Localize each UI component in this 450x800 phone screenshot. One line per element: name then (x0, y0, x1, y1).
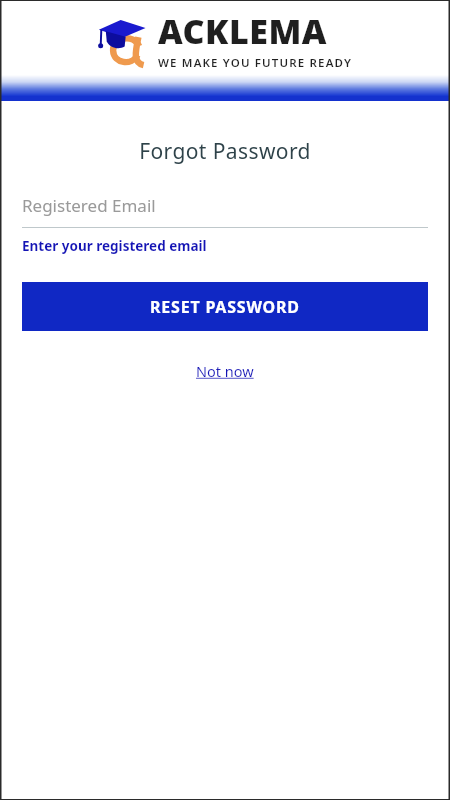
staticText: ACKLEMA (158, 8, 327, 54)
button[interactable]: Not now (186, 358, 264, 384)
button[interactable]: RESET PASSWORD (22, 282, 428, 331)
other: Acklema logo (98, 12, 152, 68)
button[interactable]: Registered Email (22, 194, 428, 228)
staticText: Forgot Password (0, 137, 450, 166)
staticText: Enter your registered email (22, 237, 207, 255)
staticText: RESET PASSWORD (150, 296, 300, 318)
staticText: Registered Email (22, 194, 156, 217)
staticText: WE MAKE YOU FUTURE READY (158, 55, 353, 71)
staticText: Not now (196, 361, 254, 381)
